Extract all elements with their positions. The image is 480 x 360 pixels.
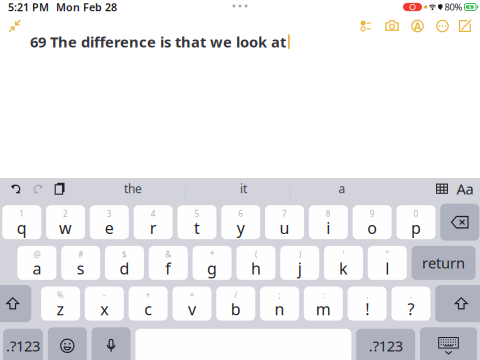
staticText: d bbox=[119, 258, 129, 279]
staticText: e bbox=[105, 217, 114, 238]
button[interactable]: Checklist bbox=[353, 15, 379, 37]
staticText: p bbox=[411, 217, 421, 238]
button[interactable]: Emoji bbox=[48, 327, 87, 360]
button[interactable]: Compose bbox=[455, 15, 476, 37]
button[interactable]: = bbox=[172, 287, 211, 321]
button[interactable]: Format bbox=[405, 15, 430, 37]
staticText: a bbox=[338, 181, 345, 197]
button[interactable]: 2 bbox=[46, 205, 85, 239]
staticText: i bbox=[326, 217, 330, 238]
staticText: + bbox=[146, 290, 151, 300]
staticText: o bbox=[367, 217, 377, 238]
button[interactable]: 4 bbox=[134, 205, 173, 239]
staticText: * bbox=[210, 249, 214, 260]
staticText: t bbox=[194, 217, 200, 238]
staticText: ' bbox=[342, 249, 344, 260]
staticText: 1 bbox=[19, 208, 24, 219]
button[interactable]: .?123 bbox=[3, 329, 43, 360]
staticText: x bbox=[100, 298, 108, 320]
button[interactable]: .?123 bbox=[356, 329, 415, 360]
staticText: .?123 bbox=[6, 336, 40, 356]
staticText: Aa bbox=[456, 179, 473, 198]
staticText: b bbox=[231, 298, 241, 320]
staticText: 5 bbox=[194, 208, 199, 219]
button[interactable]: ; bbox=[260, 287, 299, 321]
button[interactable]: Hide keyboard bbox=[420, 327, 477, 360]
button[interactable]: . bbox=[391, 287, 430, 321]
button[interactable]: $ bbox=[105, 246, 144, 280]
button[interactable]: Delete bbox=[440, 204, 479, 241]
button[interactable]: ' bbox=[324, 246, 363, 280]
staticText: y bbox=[237, 217, 245, 238]
button[interactable]: * bbox=[193, 246, 232, 280]
staticText: # bbox=[78, 249, 83, 260]
staticText: ? bbox=[407, 298, 414, 320]
staticText: u bbox=[280, 217, 290, 238]
button[interactable]: / bbox=[216, 287, 255, 321]
staticText: h bbox=[251, 258, 261, 279]
button[interactable]: Camera bbox=[379, 15, 405, 37]
staticText: 9 bbox=[370, 208, 375, 219]
button[interactable]: 9 bbox=[353, 205, 392, 239]
button[interactable]: return bbox=[412, 246, 476, 280]
staticText: ) bbox=[299, 249, 301, 260]
button[interactable]: 0 bbox=[396, 205, 435, 239]
button[interactable]: 7 bbox=[265, 205, 304, 239]
button[interactable]: 8 bbox=[309, 205, 348, 239]
button[interactable]: Table bbox=[431, 175, 453, 203]
staticText: / bbox=[234, 290, 237, 300]
staticText: : bbox=[322, 290, 324, 300]
button[interactable]: , bbox=[348, 287, 387, 321]
button[interactable]: 5 bbox=[177, 205, 216, 239]
button[interactable]: - bbox=[85, 287, 124, 321]
staticText: j bbox=[298, 258, 302, 279]
button[interactable]: Redo bbox=[27, 175, 49, 203]
button[interactable]: Collapse note list bbox=[4, 15, 26, 37]
button[interactable]: Undo bbox=[5, 175, 27, 203]
button[interactable]: @ bbox=[17, 246, 56, 280]
staticText: 80% bbox=[444, 1, 462, 13]
button[interactable]: 1 bbox=[2, 205, 41, 239]
staticText: % bbox=[57, 290, 64, 300]
staticText: 4 bbox=[151, 208, 156, 219]
button[interactable]: 3 bbox=[90, 205, 129, 239]
button[interactable]: “ bbox=[368, 246, 407, 280]
button[interactable]: : bbox=[304, 287, 343, 321]
staticText: ( bbox=[255, 249, 257, 260]
staticText: g bbox=[207, 258, 217, 279]
button[interactable]: it bbox=[195, 175, 292, 203]
staticText: f bbox=[165, 258, 171, 279]
button[interactable]: # bbox=[61, 246, 100, 280]
button[interactable]: & bbox=[149, 246, 188, 280]
staticText: return bbox=[422, 253, 465, 273]
button[interactable]: + bbox=[129, 287, 168, 321]
button[interactable]: % bbox=[41, 287, 80, 321]
staticText: = bbox=[189, 290, 194, 300]
staticText: ; bbox=[279, 290, 281, 300]
staticText: it bbox=[240, 181, 247, 197]
button[interactable]: Shift bbox=[0, 285, 31, 322]
staticText: v bbox=[188, 298, 196, 320]
button[interactable]: Paste bbox=[49, 175, 71, 203]
button[interactable]: Dictation bbox=[92, 327, 131, 360]
button[interactable]: More bbox=[430, 15, 455, 37]
button[interactable]: ( bbox=[236, 246, 275, 280]
button[interactable]: ) bbox=[280, 246, 319, 280]
staticText: 0 bbox=[413, 208, 418, 219]
staticText: m bbox=[316, 298, 331, 320]
button[interactable]: Shift bbox=[435, 285, 480, 322]
button[interactable]: a bbox=[292, 175, 392, 203]
staticText: - bbox=[103, 290, 106, 300]
staticText: & bbox=[165, 249, 171, 260]
staticText: 3 bbox=[107, 208, 112, 219]
staticText: the bbox=[124, 181, 142, 197]
staticText: c bbox=[144, 298, 152, 320]
button[interactable]: Text formatting bbox=[453, 175, 477, 203]
staticText: q bbox=[17, 217, 27, 238]
button[interactable]: the bbox=[71, 175, 195, 203]
staticText: w bbox=[59, 217, 72, 238]
staticText: z bbox=[56, 298, 64, 320]
button[interactable]: 6 bbox=[221, 205, 260, 239]
staticText: 6 bbox=[238, 208, 243, 219]
